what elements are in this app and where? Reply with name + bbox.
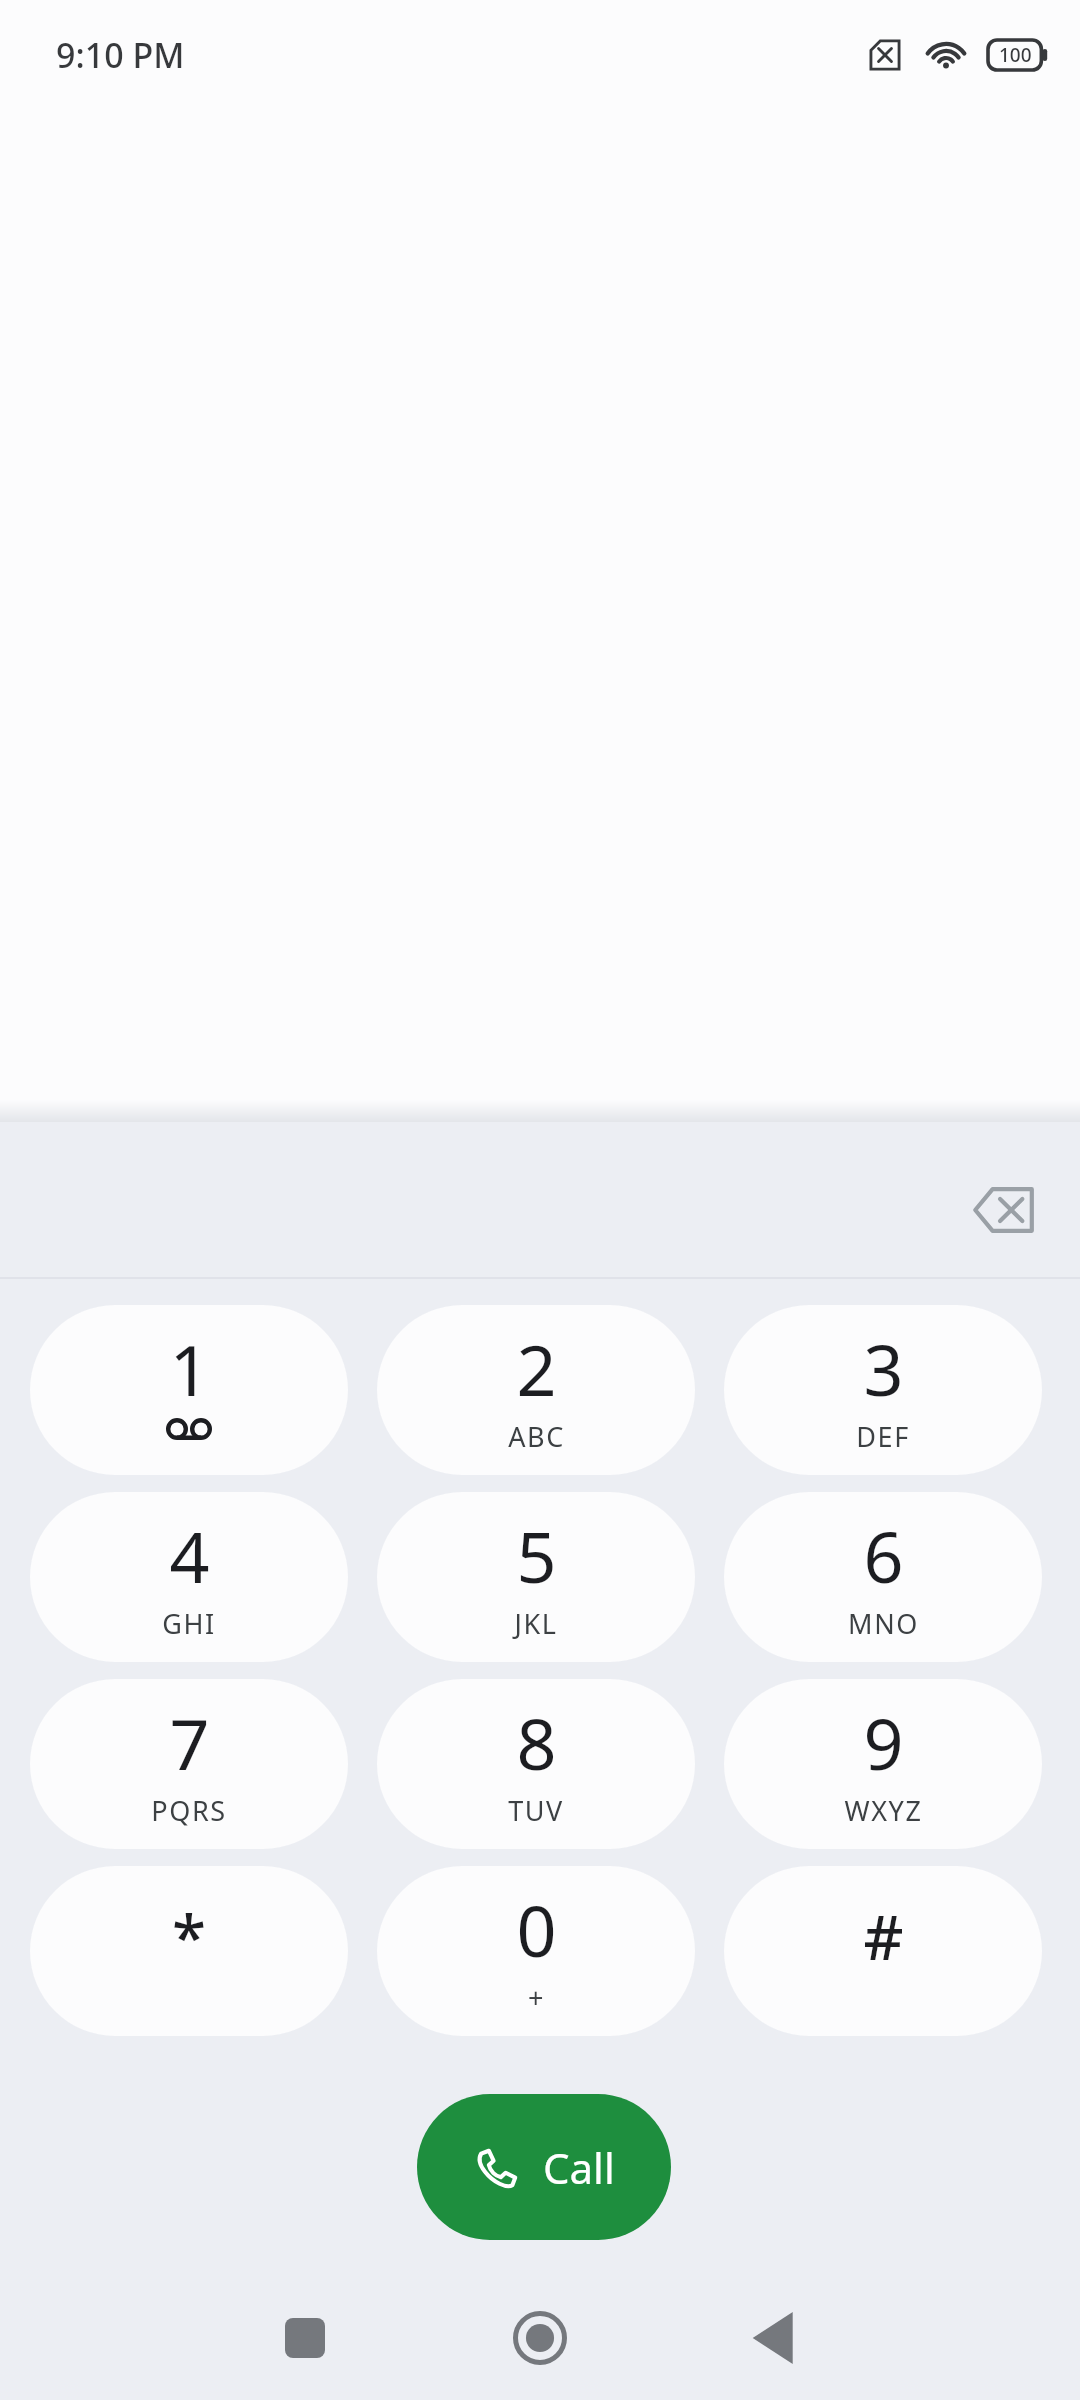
staticText: * [172, 1894, 206, 1978]
staticText: MNO [848, 1605, 919, 1642]
button[interactable]: 5 [377, 1492, 695, 1662]
staticText: PQRS [151, 1792, 227, 1829]
button[interactable]: 1 [30, 1305, 348, 1475]
button[interactable]: # [724, 1866, 1042, 2036]
staticText: DEF [856, 1418, 910, 1455]
button[interactable]: 2 [377, 1305, 695, 1475]
staticText: 1 [169, 1321, 210, 1416]
staticText: ABC [508, 1418, 565, 1455]
button[interactable]: Recent apps [245, 2278, 365, 2398]
staticText: WXYZ [844, 1792, 923, 1829]
staticText: 3 [863, 1321, 904, 1416]
button[interactable]: Backspace [945, 1150, 1065, 1270]
button[interactable]: Back [712, 2278, 832, 2398]
staticText: 6 [863, 1508, 904, 1603]
staticText: Call [543, 2139, 615, 2196]
button[interactable]: 6 [724, 1492, 1042, 1662]
button[interactable]: 7 [30, 1679, 348, 1849]
button[interactable]: Home [480, 2278, 600, 2398]
staticText: GHI [162, 1605, 216, 1642]
button[interactable]: 0 [377, 1866, 695, 2036]
button[interactable]: * [30, 1866, 348, 2036]
button[interactable]: 9 [724, 1679, 1042, 1849]
staticText: 100 [999, 42, 1032, 68]
button[interactable]: 4 [30, 1492, 348, 1662]
staticText: + [528, 1979, 544, 2016]
staticText: 4 [169, 1508, 210, 1603]
staticText: TUV [508, 1792, 564, 1829]
button[interactable]: 8 [377, 1679, 695, 1849]
staticText: 2 [516, 1321, 557, 1416]
staticText: 9 [863, 1695, 904, 1790]
staticText: 5 [516, 1508, 557, 1603]
button[interactable]: 3 [724, 1305, 1042, 1475]
staticText: JKL [514, 1605, 558, 1642]
staticText: 8 [516, 1695, 557, 1790]
staticText: 0 [516, 1882, 557, 1977]
staticText: 7 [169, 1695, 210, 1790]
button[interactable]: Call [417, 2094, 671, 2240]
staticText: 9:10 PM [56, 32, 185, 78]
staticText: # [863, 1894, 904, 1978]
